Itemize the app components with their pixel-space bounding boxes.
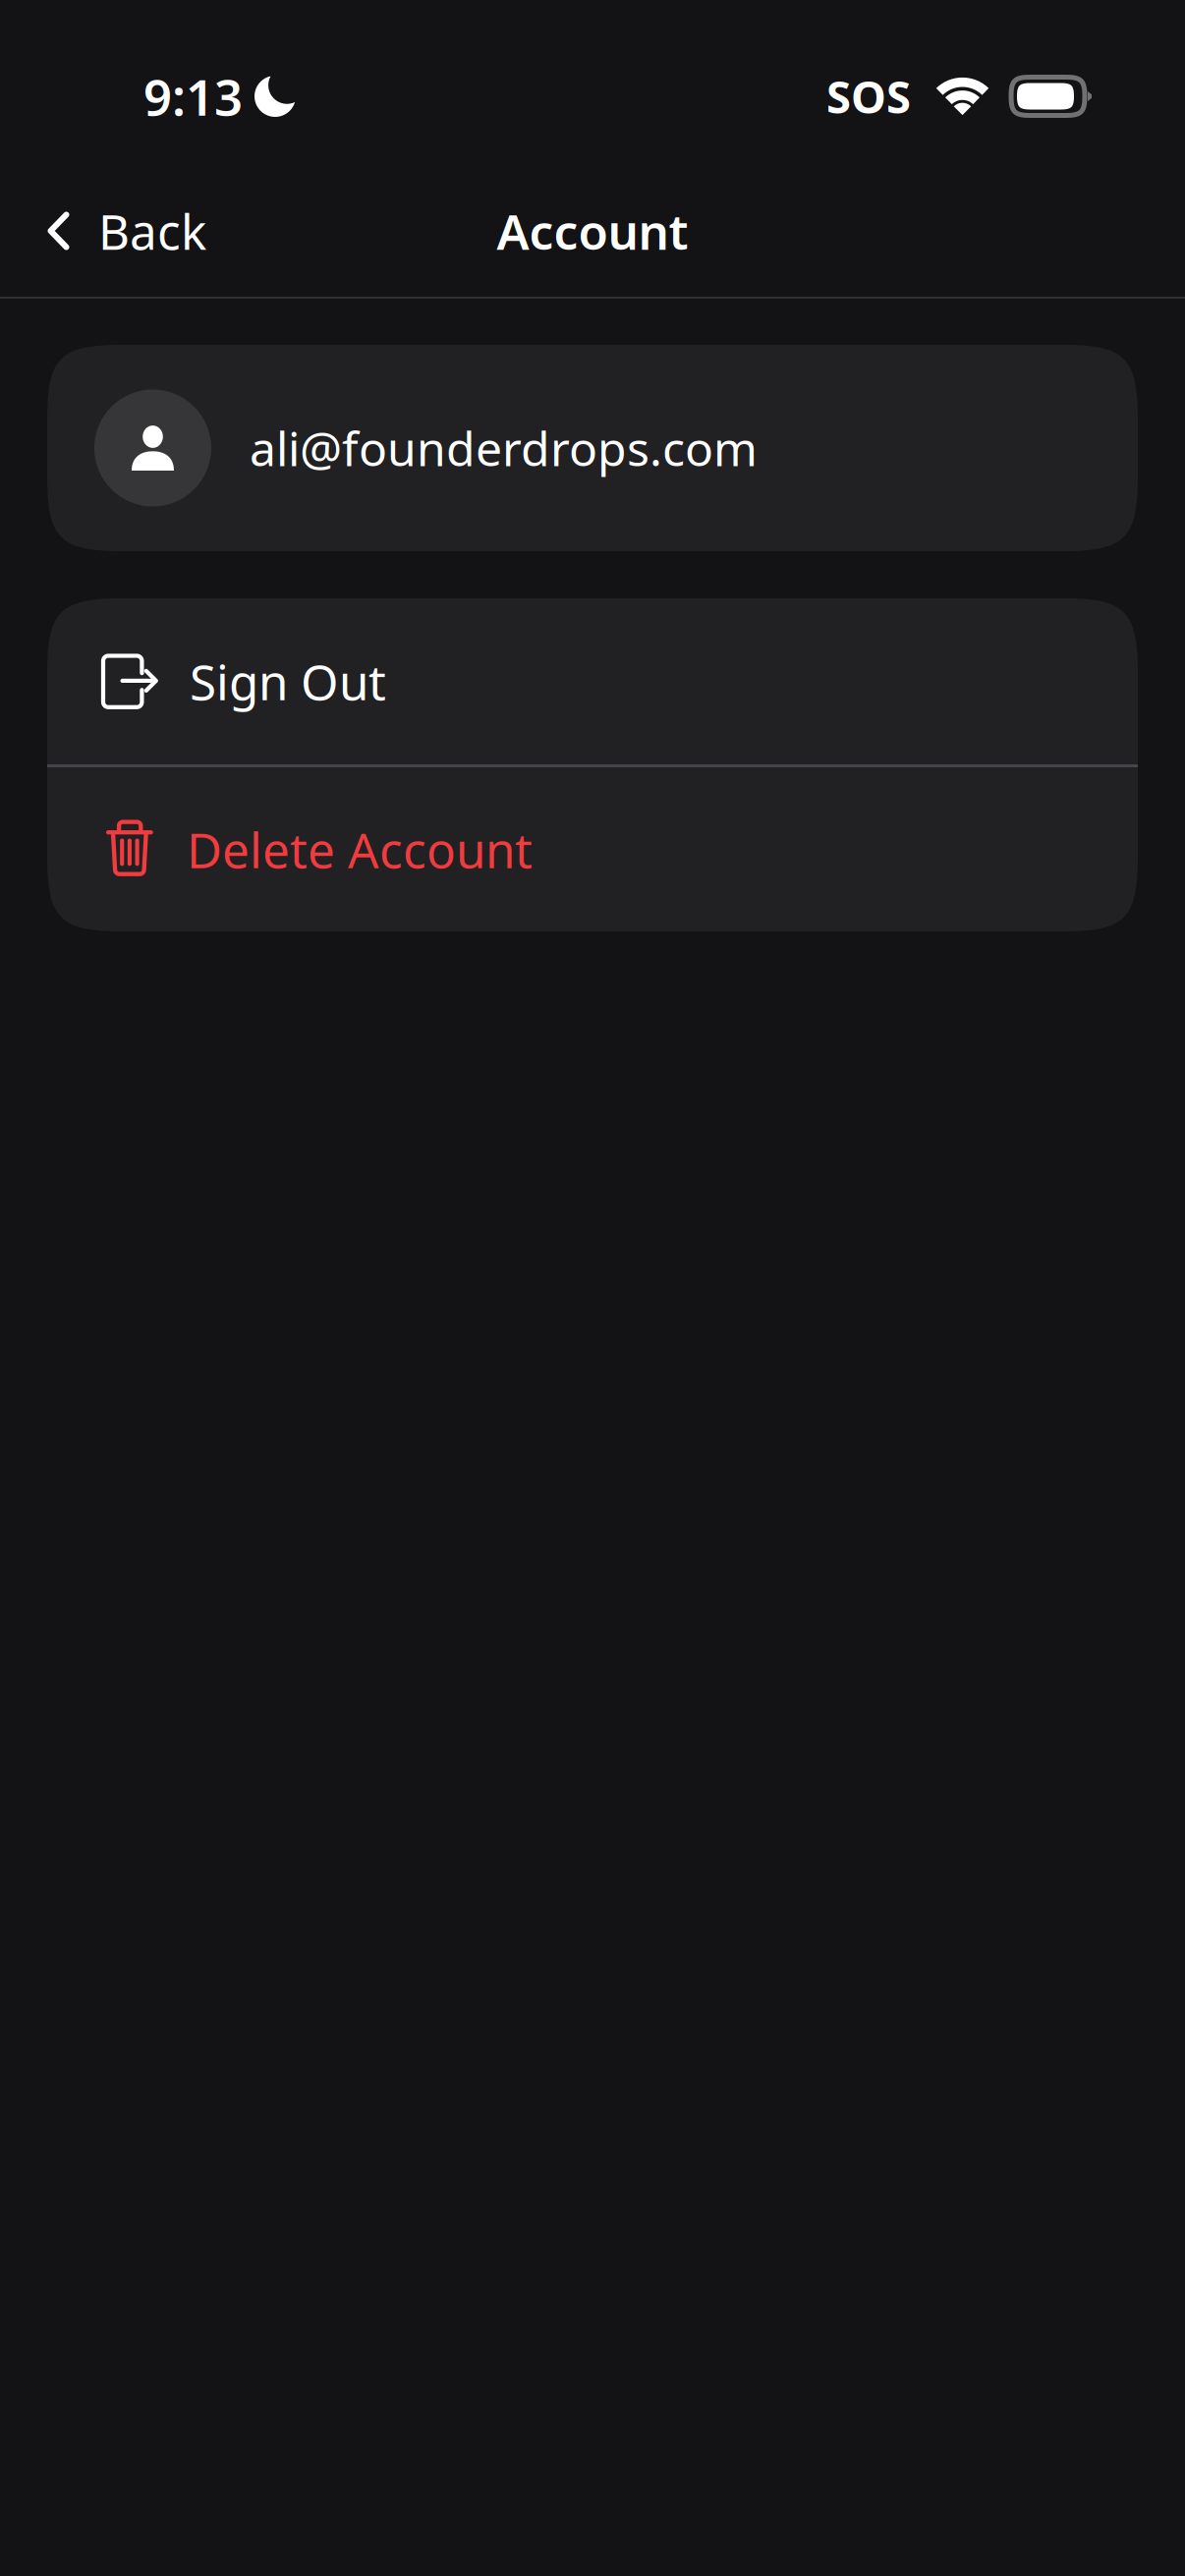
button[interactable]: ali@founderdrops.com: [47, 345, 1138, 551]
button[interactable]: Back: [0, 177, 236, 285]
staticText: Back: [98, 199, 206, 263]
staticText: SOS: [826, 67, 911, 126]
button[interactable]: Sign Out: [47, 598, 1138, 764]
staticText: 9:13: [143, 63, 243, 129]
staticText: Delete Account: [187, 817, 533, 881]
staticText: ali@founderdrops.com: [250, 417, 758, 479]
button[interactable]: Delete Account: [47, 767, 1138, 931]
staticText: Sign Out: [190, 649, 386, 713]
staticText: Account: [497, 199, 688, 263]
